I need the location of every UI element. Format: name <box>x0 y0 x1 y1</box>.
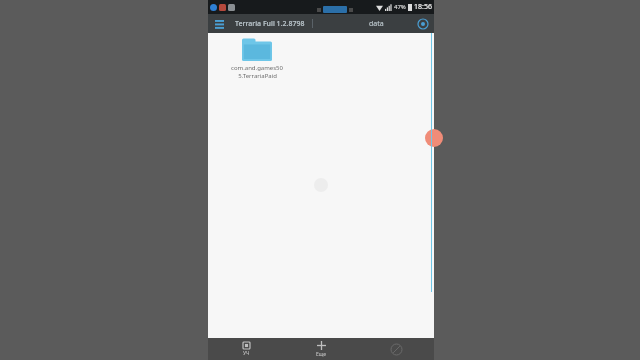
staticText: Еще <box>316 351 327 358</box>
staticText: com.and.games50 <box>231 64 283 72</box>
button[interactable]: УЧ <box>208 338 284 360</box>
staticText: data <box>369 19 384 29</box>
staticText: 5.TerrariaPaid <box>238 72 277 80</box>
staticText: 47% <box>394 3 406 11</box>
staticText: 18:56 <box>414 2 432 12</box>
button[interactable]: com.and.games50 <box>222 37 292 80</box>
button[interactable]: Еще <box>284 338 359 360</box>
staticText: УЧ <box>243 350 250 357</box>
button[interactable]: Options <box>416 17 430 31</box>
staticText: Terraria Full 1.2.8798 <box>235 19 305 29</box>
button[interactable]: Menu <box>212 17 226 31</box>
